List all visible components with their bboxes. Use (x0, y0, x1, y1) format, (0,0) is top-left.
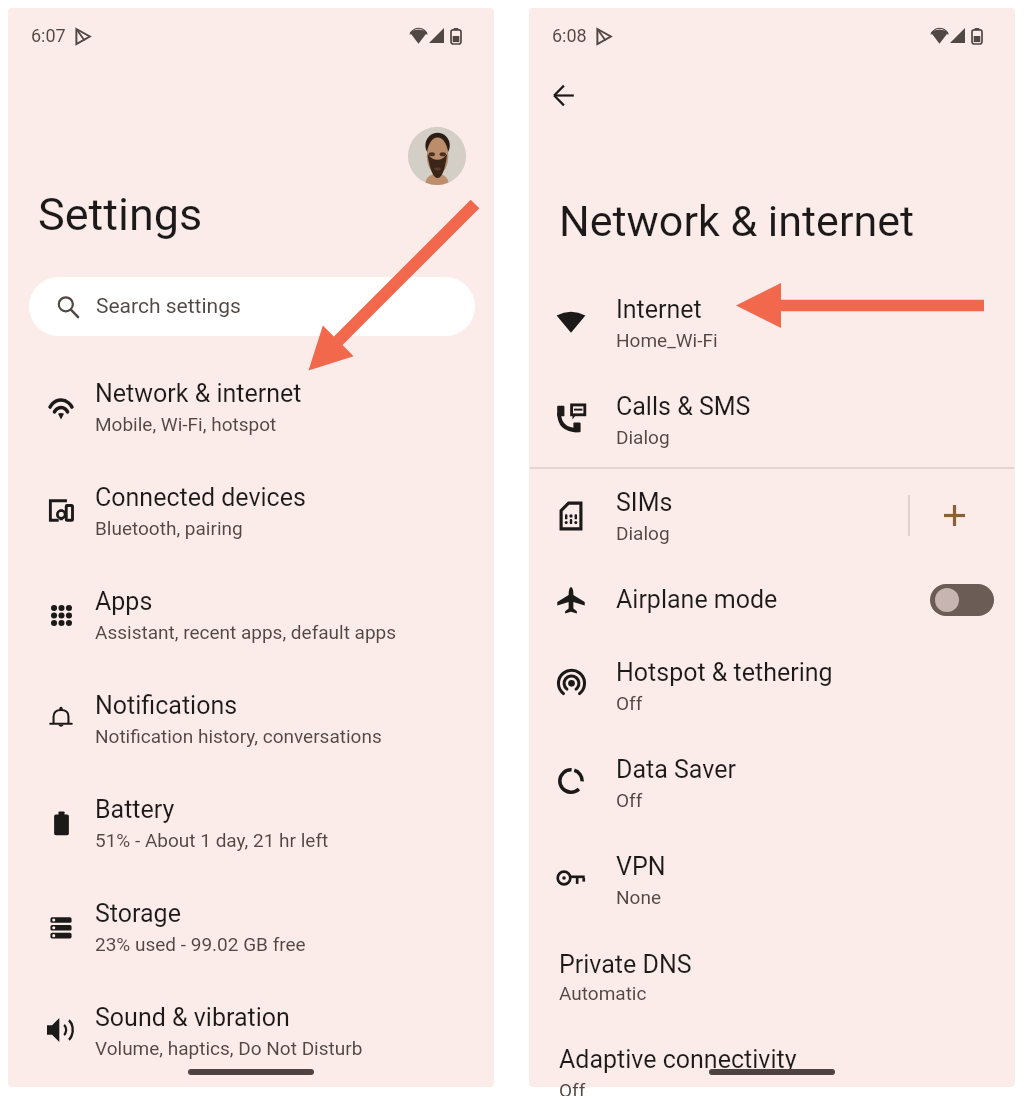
button[interactable] (14, 774, 488, 865)
staticText: Connected devices (95, 483, 306, 512)
staticText: Airplane mode (616, 585, 778, 614)
button[interactable] (14, 566, 488, 657)
button[interactable]: Back (539, 71, 587, 119)
button[interactable] (535, 1024, 1010, 1096)
staticText: 51% - About 1 day, 21 hr left (95, 829, 329, 851)
button[interactable] (14, 670, 488, 761)
staticText: Adaptive connectivity (559, 1045, 797, 1074)
button[interactable] (14, 982, 488, 1073)
staticText: Network & internet (559, 196, 915, 246)
staticText: Off (559, 1079, 586, 1096)
staticText: Calls & SMS (616, 392, 751, 421)
staticText: Private DNS (559, 950, 692, 979)
staticText: Notification history, conversations (95, 725, 382, 747)
button[interactable] (14, 358, 488, 449)
staticText: Storage (95, 899, 181, 928)
staticText: Off (616, 789, 643, 811)
staticText: None (616, 886, 661, 908)
button[interactable] (535, 637, 1010, 728)
button[interactable] (535, 274, 1010, 365)
staticText: Bluetooth, pairing (95, 517, 243, 539)
staticText: Data Saver (616, 755, 736, 784)
staticText: Settings (38, 188, 203, 241)
staticText: 23% used - 99.02 GB free (95, 933, 306, 955)
staticText: Search settings (96, 294, 241, 319)
button[interactable]: Add SIM (934, 495, 974, 535)
staticText: Internet (616, 295, 702, 324)
staticText: SIMs (616, 488, 673, 517)
button[interactable]: Search settings (29, 277, 475, 336)
staticText: VPN (616, 852, 666, 881)
staticText: Volume, haptics, Do Not Disturb (95, 1037, 363, 1059)
staticText: 6:07 (31, 25, 66, 46)
staticText: Mobile, Wi-Fi, hotspot (95, 413, 277, 435)
staticText: Network & internet (95, 379, 302, 408)
staticText: Battery (95, 795, 175, 824)
staticText: Automatic (559, 982, 647, 1004)
button[interactable] (535, 734, 1010, 825)
button[interactable]: Airplane mode toggle (930, 584, 994, 616)
staticText: Assistant, recent apps, default apps (95, 621, 397, 643)
staticText: 6:08 (552, 25, 587, 46)
button[interactable] (14, 878, 488, 969)
button[interactable] (535, 929, 1010, 1018)
staticText: Notifications (95, 691, 238, 720)
staticText: Dialog (616, 522, 670, 544)
button[interactable] (535, 467, 900, 558)
staticText: Dialog (616, 426, 670, 448)
staticText: Home_Wi-Fi (616, 329, 718, 351)
button[interactable] (14, 462, 488, 553)
staticText: Sound & vibration (95, 1003, 290, 1032)
staticText: Apps (95, 587, 153, 616)
button[interactable]: Account (408, 127, 466, 185)
button[interactable] (535, 831, 1010, 922)
button[interactable] (535, 564, 900, 623)
staticText: Hotspot & tethering (616, 658, 833, 687)
button[interactable] (535, 371, 1010, 462)
staticText: Off (616, 692, 643, 714)
